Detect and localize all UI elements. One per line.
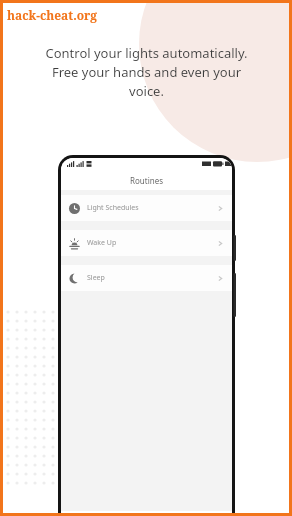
staticText: Light Schedules <box>87 203 139 213</box>
button[interactable]: Routines <box>146 511 189 516</box>
button[interactable]: Wake Up <box>61 230 232 256</box>
button[interactable]: Sleep <box>61 265 232 291</box>
button[interactable]: Home <box>61 511 103 516</box>
staticText: hack-cheat.org <box>7 7 98 23</box>
staticText: Control your lights automatically. Free … <box>45 44 248 100</box>
staticText: Wake Up <box>87 238 117 248</box>
staticText: Sleep <box>87 273 105 283</box>
button[interactable]: Scenes <box>103 511 146 516</box>
staticText: Routines <box>130 175 163 186</box>
button[interactable]: Settings <box>189 511 232 516</box>
button[interactable]: Light Schedules <box>61 195 232 221</box>
